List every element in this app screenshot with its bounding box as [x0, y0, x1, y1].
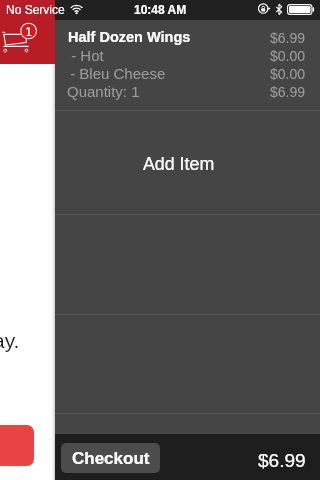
staticText: $0.00	[270, 66, 306, 82]
staticText: $6.99	[270, 30, 306, 46]
staticText: $0.00	[270, 48, 306, 64]
staticText: $6.99	[270, 84, 306, 100]
staticText: - Hot	[67, 47, 104, 64]
staticText: 1	[25, 24, 33, 39]
staticText: Add Item	[143, 154, 215, 174]
button[interactable]	[0, 425, 34, 466]
staticText: Half Dozen Wings	[68, 29, 191, 45]
button[interactable]: Shopping cart	[0, 28, 34, 62]
staticText: - Bleu Cheese	[66, 65, 166, 82]
staticText: Checkout	[72, 449, 150, 468]
staticText: 10:48 AM	[134, 3, 187, 16]
button[interactable]	[55, 20, 320, 110]
staticText: Quantity: 1	[67, 83, 140, 100]
button[interactable]: Add Item	[55, 111, 320, 214]
button[interactable]: Checkout	[61, 443, 160, 473]
staticText: $6.99	[258, 450, 306, 471]
other: 1 item in cart	[20, 22, 38, 40]
staticText: ay.	[0, 329, 20, 352]
staticText: No Service	[6, 3, 65, 16]
